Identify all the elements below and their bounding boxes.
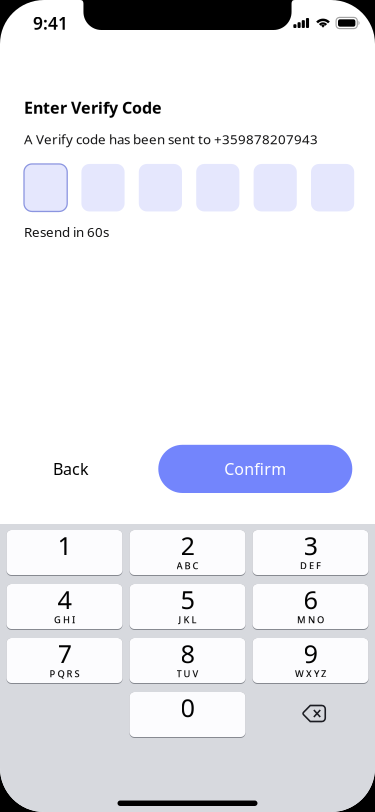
button[interactable]: 7: [6, 638, 122, 684]
button[interactable]: Delete: [252, 692, 368, 738]
button[interactable]: 4: [6, 584, 122, 630]
staticText: 9:41: [33, 11, 68, 34]
staticText: G H I: [54, 613, 75, 626]
button[interactable]: 1: [6, 530, 122, 576]
staticText: 4: [57, 582, 71, 616]
staticText: P Q R S: [49, 667, 79, 680]
staticText: 9: [303, 636, 317, 670]
staticText: A B C: [176, 559, 198, 572]
button[interactable]: Verification code digit: [24, 164, 67, 211]
staticText: 5: [180, 582, 194, 616]
button[interactable]: 9: [252, 638, 368, 684]
button[interactable]: 2: [129, 530, 245, 576]
staticText: 0: [180, 690, 194, 724]
staticText: M N O: [297, 613, 324, 626]
button[interactable]: 0: [129, 692, 245, 738]
button[interactable]: Confirm: [158, 445, 352, 493]
staticText: A Verify code has been sent to +35987820…: [24, 130, 318, 148]
staticText: 2: [180, 528, 194, 562]
staticText: W X Y Z: [295, 667, 326, 680]
staticText: 1: [57, 528, 71, 562]
button[interactable]: Back: [24, 445, 118, 493]
staticText: 3: [303, 528, 317, 562]
staticText: Resend in 60s: [24, 223, 109, 241]
button[interactable]: Verification code digit: [311, 164, 354, 211]
staticText: Enter Verify Code: [24, 97, 162, 118]
staticText: 6: [303, 582, 317, 616]
button[interactable]: 3: [252, 530, 368, 576]
button[interactable]: 6: [252, 584, 368, 630]
staticText: Confirm: [224, 458, 286, 479]
staticText: 8: [180, 636, 194, 670]
staticText: D E F: [300, 559, 321, 572]
staticText: 7: [57, 636, 71, 670]
staticText: J K L: [178, 613, 196, 626]
button[interactable]: Verification code digit: [254, 164, 297, 211]
button[interactable]: Verification code digit: [139, 164, 182, 211]
button[interactable]: 8: [129, 638, 245, 684]
button[interactable]: 5: [129, 584, 245, 630]
staticText: Back: [53, 458, 89, 479]
button[interactable]: Verification code digit: [81, 164, 125, 211]
staticText: T U V: [176, 667, 198, 680]
button[interactable]: Verification code digit: [196, 164, 239, 211]
